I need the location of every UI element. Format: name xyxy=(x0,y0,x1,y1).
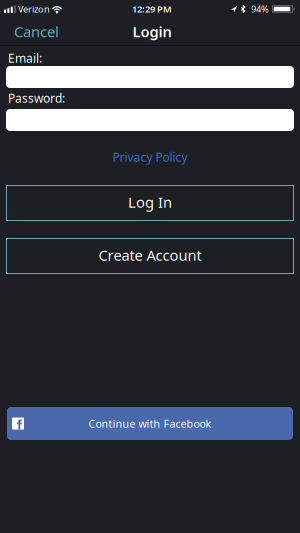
staticText: Verizon xyxy=(18,3,50,15)
staticText: Login xyxy=(132,22,171,41)
staticText: 12:29 PM xyxy=(132,3,172,15)
button[interactable]: Create Account xyxy=(6,238,294,274)
staticText: Email: xyxy=(8,50,42,66)
button[interactable]: Privacy Policy xyxy=(112,149,187,165)
staticText: Privacy Policy xyxy=(112,149,187,165)
staticText: 94% xyxy=(251,3,269,15)
button[interactable]: Cancel xyxy=(14,22,59,41)
staticText: Continue with Facebook xyxy=(88,416,211,431)
staticText: Create Account xyxy=(98,245,201,265)
staticText: Cancel xyxy=(14,22,59,41)
staticText: Log In xyxy=(128,192,172,212)
button[interactable]: Continue with Facebook xyxy=(7,407,293,440)
staticText: Password: xyxy=(8,90,65,106)
button[interactable]: Log In xyxy=(6,185,294,221)
